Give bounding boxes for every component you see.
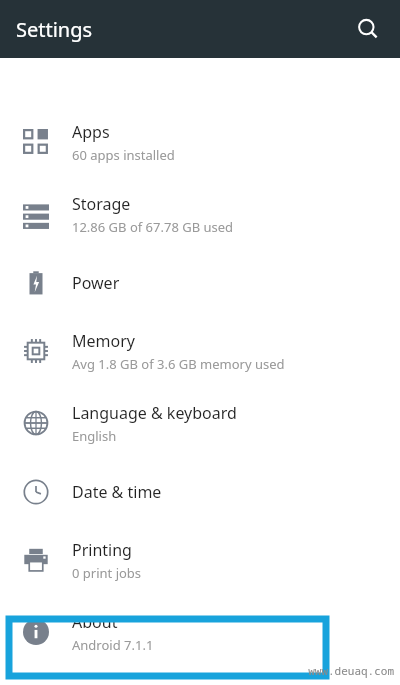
staticText: English: [72, 427, 117, 445]
staticText: 12.86 GB of 67.78 GB used: [72, 218, 234, 236]
staticText: 60 apps installed: [72, 146, 175, 164]
staticText: Apps: [72, 121, 110, 143]
staticText: Android 7.1.1: [72, 636, 154, 654]
staticText: Power: [72, 272, 120, 294]
button[interactable]: Memory: [0, 315, 400, 387]
staticText: Settings: [16, 16, 93, 43]
staticText: www.deuaq.com: [308, 663, 394, 678]
button[interactable]: Storage: [0, 178, 400, 250]
staticText: Memory: [72, 330, 135, 352]
button[interactable]: Search: [344, 5, 392, 53]
staticText: Language & keyboard: [72, 402, 237, 424]
button[interactable]: Language & keyboard: [0, 387, 400, 459]
button[interactable]: Printing: [0, 524, 400, 596]
button[interactable]: Power: [0, 250, 400, 315]
button[interactable]: About: [0, 596, 400, 668]
staticText: Avg 1.8 GB of 3.6 GB memory used: [72, 355, 285, 373]
staticText: 0 print jobs: [72, 564, 142, 582]
staticText: About: [72, 611, 118, 633]
button[interactable]: Date & time: [0, 459, 400, 524]
staticText: Printing: [72, 539, 132, 561]
staticText: Date & time: [72, 481, 162, 503]
staticText: Storage: [72, 193, 131, 215]
button[interactable]: Apps: [0, 106, 400, 178]
